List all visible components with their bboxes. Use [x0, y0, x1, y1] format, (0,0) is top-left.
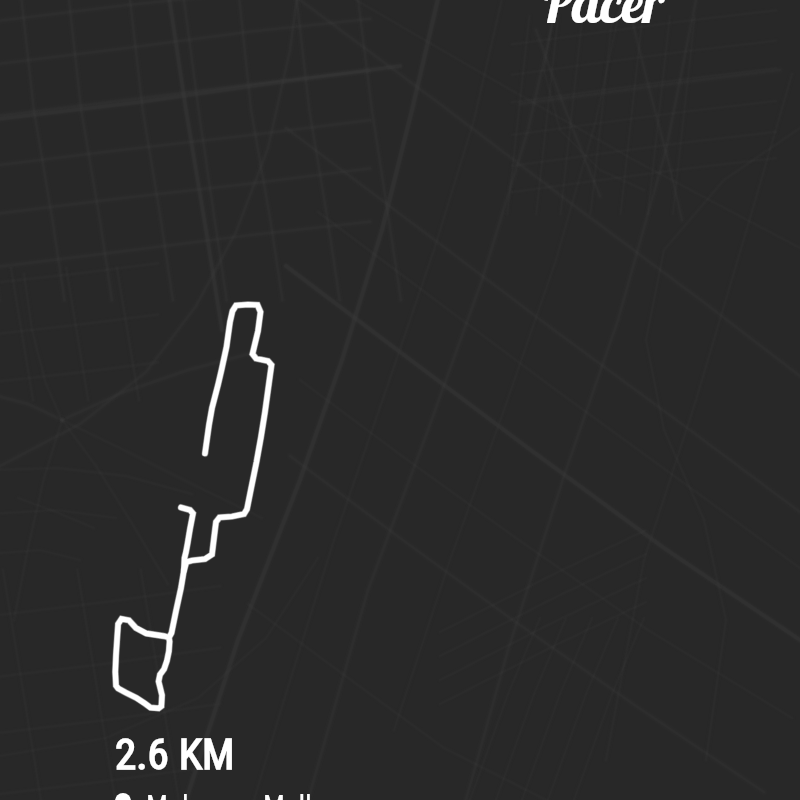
staticText: 2.6 KM — [115, 729, 235, 779]
button[interactable]: Pacer — [539, 0, 664, 37]
staticText: Pacer — [539, 0, 664, 37]
button[interactable]: Route map — [0, 0, 800, 800]
staticText: Mulgrave, Melbourne — [146, 789, 385, 800]
button[interactable]: 2.6 KM — [115, 729, 385, 800]
